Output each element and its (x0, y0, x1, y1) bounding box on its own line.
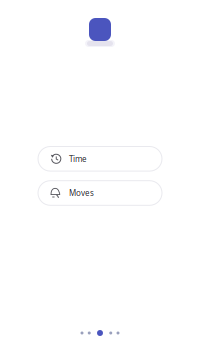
button[interactable]: Time (38, 146, 162, 171)
staticText: Time (69, 153, 87, 164)
button[interactable]: Moves (38, 181, 162, 205)
staticText: Moves (69, 188, 94, 198)
